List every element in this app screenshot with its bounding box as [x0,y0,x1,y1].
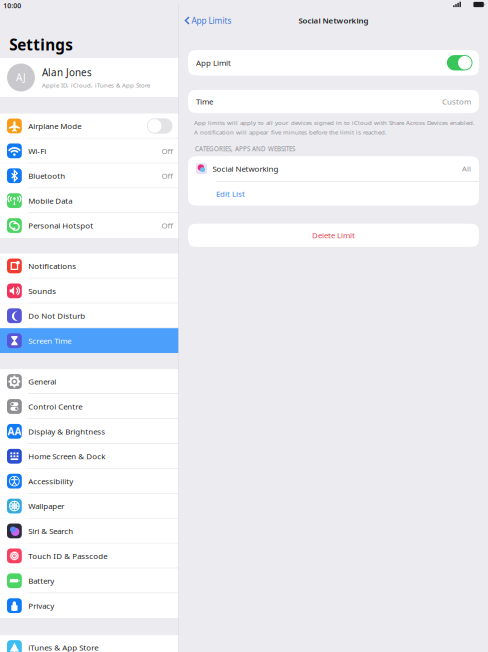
staticText: Wi-Fi [28,145,46,156]
staticText: Delete Limit [312,230,355,241]
button[interactable]: Personal Hotspot [0,213,178,238]
button[interactable]: Bluetooth [0,163,178,188]
staticText: CATEGORIES, APPS AND WEBSITES [195,145,295,153]
staticText: AJ [16,71,26,84]
button[interactable]: Screen Time [0,328,178,353]
staticText: Accessibility [28,476,73,486]
staticText: Personal Hotspot [28,220,93,231]
staticText: Privacy [28,600,54,611]
button[interactable]: Wi-Fi [0,138,178,163]
staticText: App Limits [191,15,231,26]
staticText: 10:00 [3,1,21,10]
staticText: Apple ID, iCloud, iTunes & App Store [42,81,150,89]
button[interactable]: Siri & Search [0,518,178,543]
staticText: Custom [442,96,471,107]
staticText: Edit List [216,188,245,199]
button[interactable]: Time [188,90,479,113]
button[interactable]: Notifications [0,253,178,278]
staticText: A notification will appear five minutes … [194,128,387,136]
button[interactable]: General [0,369,178,394]
staticText: Social Networking [212,163,278,174]
staticText: iTunes & App Store [28,642,98,652]
staticText: Touch ID & Passcode [28,550,107,561]
staticText: Notifications [28,261,76,271]
staticText: Social Networking [298,15,368,26]
button[interactable]: Touch ID & Passcode [0,543,178,568]
staticText: Battery [28,575,54,586]
button[interactable]: App Limit [188,50,479,75]
staticText: Screen Time [28,335,71,346]
button[interactable]: Social Networking [188,156,479,181]
staticText: Bluetooth [28,170,65,181]
staticText: Alan Jones [42,66,92,79]
staticText: Mobile Data [28,195,72,206]
staticText: App limits will apply to all your device… [194,119,475,127]
button[interactable]: Do Not Disturb [0,303,178,328]
staticText: Sounds [28,285,56,296]
staticText: Display & Brightness [28,426,105,437]
button[interactable]: Wallpaper [0,494,178,518]
staticText: Wallpaper [28,501,64,511]
staticText: Home Screen & Dock [28,451,105,462]
staticText: Off [161,145,172,156]
button[interactable]: Sounds [0,278,178,303]
button[interactable]: App Limits [184,15,231,26]
staticText: Time [196,96,213,107]
button[interactable]: Privacy [0,593,178,618]
button[interactable]: Accessibility [0,469,178,494]
staticText: App Limit [196,57,231,68]
staticText: Do Not Disturb [28,310,85,321]
staticText: Airplane Mode [28,121,81,131]
button[interactable]: Edit List [188,182,479,206]
button[interactable]: Home Screen & Dock [0,444,178,469]
button[interactable]: Mobile Data [0,188,178,213]
staticText: Off [161,170,172,181]
button[interactable]: Airplane Mode [0,113,178,138]
staticText: AA [7,425,21,438]
staticText: Siri & Search [28,526,73,536]
button[interactable]: Control Centre [0,394,178,419]
staticText: Settings [9,34,73,55]
button[interactable]: iTunes & App Store [0,635,178,652]
staticText: General [28,376,56,387]
staticText: All [462,163,471,174]
staticText: Off [161,220,172,231]
button[interactable]: AA [0,419,178,444]
button[interactable]: AJ [0,58,178,97]
button[interactable]: Delete Limit [188,224,479,247]
button[interactable]: Battery [0,568,178,593]
staticText: Control Centre [28,401,82,412]
